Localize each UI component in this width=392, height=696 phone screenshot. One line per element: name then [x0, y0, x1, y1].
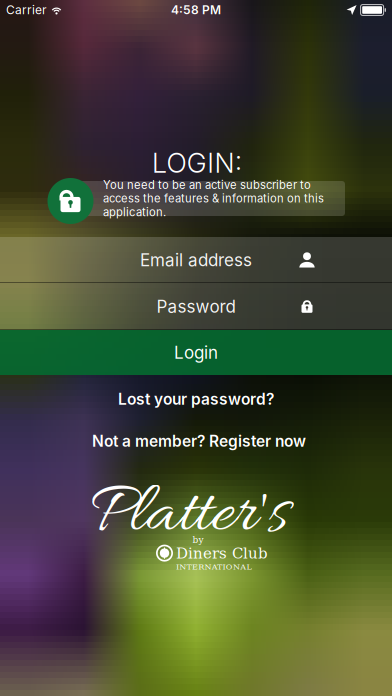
- button[interactable]: Password: [0, 283, 392, 330]
- staticText: by: [192, 535, 203, 545]
- staticText: Not a member? Register now: [92, 432, 306, 450]
- button[interactable]: Lost your password?: [96, 386, 296, 412]
- staticText: Password: [156, 296, 235, 317]
- button[interactable]: Not a member? Register now: [74, 428, 324, 454]
- button[interactable]: Login: [0, 330, 392, 375]
- staticText: Platter's: [90, 471, 288, 561]
- staticText: Email address: [140, 250, 252, 270]
- staticText: Carrier: [6, 3, 47, 17]
- staticText: Lost your password?: [118, 390, 274, 408]
- staticText: 4:58 PM: [171, 3, 221, 17]
- staticText: You need to be an active subscriber to a…: [103, 178, 324, 219]
- staticText: LOGIN:: [152, 147, 242, 179]
- staticText: Login: [174, 342, 218, 363]
- button[interactable]: Email address: [0, 237, 392, 283]
- staticText: INTERNATIONAL: [176, 562, 252, 571]
- staticText: Diners Club: [176, 545, 268, 562]
